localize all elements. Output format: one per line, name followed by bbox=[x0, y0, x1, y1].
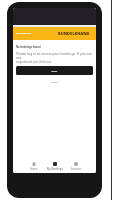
button[interactable]: Login bbox=[16, 66, 93, 75]
button[interactable]: Account bbox=[65, 162, 86, 171]
staticText: Please log in to access your bookings. I… bbox=[16, 51, 93, 64]
staticText: My Bookings bbox=[16, 31, 31, 34]
staticText: Login bbox=[51, 69, 58, 72]
staticText: Signup bbox=[51, 81, 59, 84]
staticText: BUNDELKHAND bbox=[58, 31, 90, 36]
button[interactable]: Signup bbox=[16, 77, 93, 87]
staticText: No bookings found bbox=[16, 45, 41, 49]
button[interactable]: Home bbox=[23, 162, 44, 171]
button[interactable]: My Bookings bbox=[44, 162, 65, 171]
staticText: Home bbox=[30, 167, 38, 171]
staticText: My Bookings bbox=[47, 167, 63, 171]
staticText: Account bbox=[71, 167, 81, 171]
